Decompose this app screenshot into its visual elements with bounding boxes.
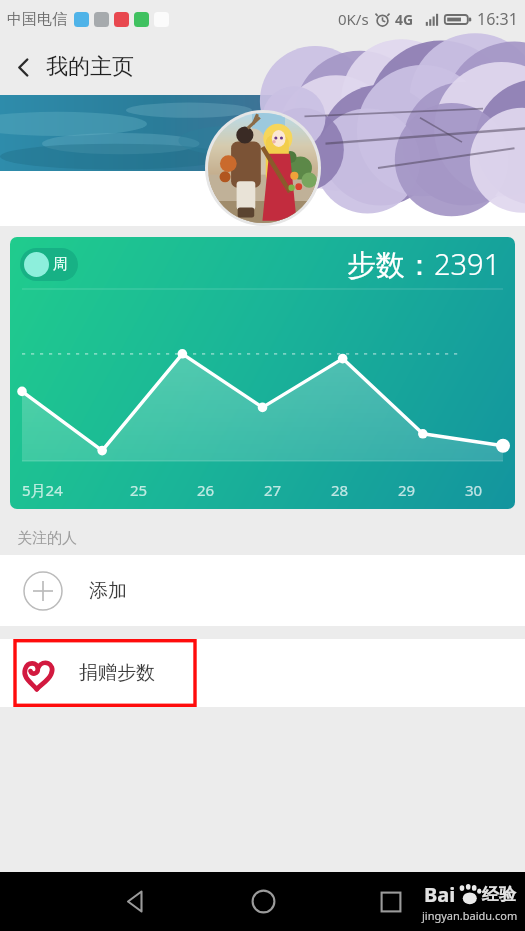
button[interactable]: 周 [10,237,515,509]
staticText: 0K/s [338,9,369,29]
staticText: 关注的人 [17,529,77,548]
staticText: 经验 [482,884,516,905]
staticText: 周 [53,255,68,274]
button[interactable]: Back [71,872,199,931]
button[interactable]: 周 [24,252,74,277]
staticText: 中国电信 [7,10,67,29]
button[interactable]: Back [0,44,46,90]
staticText: 25 [130,480,148,500]
staticText: 16:31 [477,8,518,30]
staticText: 29 [398,480,416,500]
button[interactable]: Home [199,872,327,931]
button[interactable]: 捐赠步数 [0,639,196,707]
staticText: 我的主页 [46,53,134,81]
staticText: 步数：2391 [347,244,501,284]
staticText: 捐赠步数 [79,661,155,685]
staticText: 28 [331,480,349,500]
staticText: 26 [197,480,215,500]
staticText: 27 [264,480,282,500]
staticText: 4G [395,10,414,29]
button[interactable]: Recent apps [327,872,455,931]
staticText: Bai [424,881,456,908]
button[interactable]: More options [465,38,525,95]
staticText: 30 [465,480,483,500]
staticText: 添加 [89,579,127,603]
button[interactable]: Profile photo [205,110,321,226]
staticText: jingyan.baidu.com [422,908,518,923]
button[interactable]: 添加 [0,555,525,626]
staticText: 5月24 [22,480,63,500]
